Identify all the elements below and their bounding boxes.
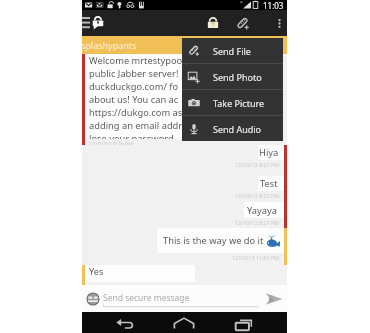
button[interactable]: Back	[112, 312, 136, 333]
staticText: Yes	[89, 265, 104, 278]
staticText: Send secure message	[103, 292, 190, 304]
staticText: 12/13/13 11:01 PM	[232, 254, 280, 261]
button[interactable]: Encryption state	[206, 10, 220, 36]
button[interactable]: Open navigation drawer	[82, 10, 92, 36]
staticText: Send Audio	[213, 123, 262, 135]
button[interactable]: Welcome mrtestypoo	[82, 54, 287, 145]
button[interactable]: This is the way we do it	[82, 228, 287, 265]
button[interactable]: Home	[172, 312, 196, 333]
button[interactable]: Attach	[234, 10, 250, 36]
button[interactable]: Yes	[82, 265, 287, 285]
staticText: 12/10/13 8:27 PM	[235, 161, 280, 168]
staticText: 12/10/13 8:20 PM	[89, 140, 134, 145]
staticText: 11:03	[263, 0, 284, 10]
button[interactable]: Yayaya	[82, 202, 287, 228]
staticText: public Jabber server!	[89, 67, 179, 80]
staticText: about us! You can ac	[89, 93, 179, 106]
staticText: Hiya	[259, 146, 279, 159]
staticText: duckduckgo.com/ fo	[89, 80, 179, 93]
staticText: splashypants	[81, 39, 137, 51]
button[interactable]: More options	[272, 10, 287, 36]
staticText: Welcome mrtestypoo	[89, 54, 183, 67]
staticText: https://dukgo.com as	[89, 106, 183, 119]
button[interactable]: Emoji	[84, 290, 102, 308]
button[interactable]: Send File	[182, 38, 283, 63]
staticText: lose your password.	[89, 132, 177, 139]
staticText: Yayaya	[247, 204, 277, 217]
staticText: 12/10/13 8:27 PM	[235, 219, 280, 226]
staticText: adding an email addr	[89, 119, 183, 132]
button[interactable]: Send Audio	[182, 116, 283, 141]
staticText: Send File	[213, 45, 251, 57]
staticText: Take Picture	[213, 97, 265, 109]
staticText: Send Photo	[213, 71, 262, 83]
staticText: Test	[260, 177, 278, 190]
button[interactable]: Take Picture	[182, 90, 283, 115]
staticText: This is the way we do it	[163, 234, 264, 247]
button[interactable]: Hiya	[82, 145, 287, 176]
button[interactable]: ChatSecure	[90, 15, 106, 31]
staticText: 12/10/13 8:27 PM	[235, 192, 280, 199]
button[interactable]: splashypants	[82, 36, 287, 54]
button[interactable]: Send	[263, 288, 285, 310]
button[interactable]: Recent apps	[231, 312, 255, 333]
button[interactable]: Send Photo	[182, 64, 283, 89]
button[interactable]: Test	[82, 176, 287, 202]
button[interactable]: Send secure message	[103, 285, 259, 312]
